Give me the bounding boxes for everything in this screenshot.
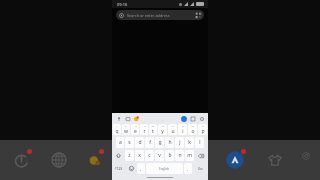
staticText: 5	[152, 125, 154, 128]
button[interactable]: v	[155, 150, 164, 161]
staticText: Go	[198, 166, 203, 171]
staticText: q	[115, 128, 119, 135]
staticText: g	[158, 139, 162, 146]
button[interactable]: Keyboard settings	[198, 115, 205, 122]
button[interactable]: Messages	[222, 147, 248, 173]
staticText: f	[149, 139, 151, 146]
staticText: v	[158, 152, 161, 159]
button[interactable]: 9	[188, 124, 197, 135]
button[interactable]: Emoji	[126, 163, 136, 174]
button[interactable]: l	[195, 137, 204, 148]
button[interactable]: c	[145, 150, 154, 161]
staticText: c	[148, 152, 151, 159]
button[interactable]: ,	[137, 163, 145, 174]
staticText: 7	[172, 125, 174, 128]
button[interactable]: 4	[140, 124, 148, 135]
button[interactable]: h	[165, 137, 174, 148]
staticText: d	[138, 139, 142, 146]
button[interactable]: d	[135, 137, 144, 148]
button[interactable]: 6	[158, 124, 167, 135]
staticText: x	[138, 152, 141, 159]
button[interactable]: Stickers	[133, 115, 140, 122]
staticText: ?123	[115, 166, 123, 171]
staticText: b	[168, 152, 172, 159]
button[interactable]: Clipboard	[124, 115, 131, 122]
staticText: t	[152, 128, 154, 135]
staticText: s	[128, 139, 131, 146]
button[interactable]: ?123	[113, 163, 125, 174]
staticText: k	[188, 139, 191, 146]
button[interactable]: Space	[146, 163, 183, 174]
staticText: ,	[140, 166, 142, 172]
button[interactable]: j	[175, 137, 184, 148]
button[interactable]: Assistant	[8, 147, 34, 173]
button[interactable]: x	[135, 150, 144, 161]
staticText: 4	[144, 125, 146, 128]
staticText: o	[191, 128, 195, 135]
staticText: English	[159, 167, 170, 171]
staticText: 9	[192, 125, 194, 128]
button[interactable]: m	[185, 150, 194, 161]
staticText: l	[199, 139, 201, 146]
staticText: e	[134, 128, 137, 135]
button[interactable]: Voice input	[115, 115, 122, 122]
button[interactable]: Shopping	[262, 147, 288, 173]
staticText: 6	[162, 125, 164, 128]
button[interactable]: f	[145, 137, 154, 148]
staticText: n	[178, 152, 182, 159]
staticText: .	[187, 166, 189, 172]
staticText: h	[168, 139, 172, 146]
button[interactable]: b	[165, 150, 174, 161]
staticText: 2	[125, 125, 127, 128]
button[interactable]: s	[125, 137, 134, 148]
button[interactable]: z	[125, 150, 134, 161]
button[interactable]: 0	[198, 124, 207, 135]
staticText: 0	[202, 125, 204, 128]
button[interactable]: 2	[122, 124, 130, 135]
staticText: r	[143, 128, 146, 135]
staticText: y	[161, 128, 164, 135]
staticText: j	[179, 139, 181, 146]
staticText: 3	[135, 125, 137, 128]
button[interactable]: Go	[193, 163, 207, 174]
staticText: 8	[182, 125, 184, 128]
button[interactable]: Browser	[46, 147, 72, 173]
staticText: m	[187, 152, 192, 159]
button[interactable]: Notes	[84, 147, 106, 173]
button[interactable]: Theme	[189, 115, 196, 122]
button[interactable]: g	[155, 137, 164, 148]
staticText: Search or enter address	[127, 13, 170, 18]
button[interactable]: .	[184, 163, 192, 174]
staticText: 09:16	[117, 2, 128, 7]
staticText: a	[119, 139, 122, 146]
button[interactable]: Shift	[113, 150, 124, 161]
button[interactable]: 8	[178, 124, 187, 135]
staticText: 1	[116, 125, 118, 128]
staticText: z	[128, 152, 131, 159]
button[interactable]: Backspace	[195, 150, 207, 161]
button[interactable]: k	[185, 137, 194, 148]
button[interactable]: 1	[113, 124, 121, 135]
staticText: u	[171, 128, 175, 135]
staticText: w	[124, 128, 128, 135]
staticText: p	[201, 128, 205, 135]
button[interactable]: 7	[168, 124, 177, 135]
button[interactable]: Search or enter address	[116, 10, 204, 20]
button[interactable]: Translate	[180, 115, 187, 122]
button[interactable]: 5	[149, 124, 157, 135]
button[interactable]: a	[116, 137, 124, 148]
staticText: i	[182, 128, 184, 135]
button[interactable]: n	[175, 150, 184, 161]
button[interactable]: 3	[131, 124, 139, 135]
button[interactable]: Camera	[302, 147, 310, 173]
